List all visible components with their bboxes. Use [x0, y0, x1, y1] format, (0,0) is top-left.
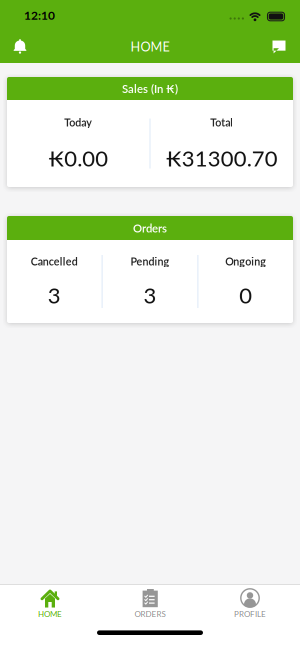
staticText: 12:10 — [24, 8, 55, 22]
staticText: Today — [64, 116, 92, 129]
button[interactable]: Profile — [200, 585, 300, 619]
staticText: HOME — [38, 609, 62, 619]
staticText: Cancelled — [31, 255, 78, 268]
staticText: 3 — [48, 282, 61, 308]
staticText: Sales (In ₭) — [122, 82, 178, 95]
staticText: HOME — [130, 39, 169, 54]
staticText: 0 — [239, 282, 252, 308]
staticText: Pending — [130, 255, 169, 268]
staticText: ₭31300.70 — [166, 145, 278, 171]
button[interactable]: Messages — [271, 31, 300, 62]
staticText: Orders — [133, 221, 167, 235]
button[interactable]: Home — [0, 585, 100, 619]
staticText: 3 — [143, 282, 156, 308]
button[interactable]: Orders — [100, 585, 200, 619]
staticText: Ongoing — [225, 255, 266, 268]
staticText: ₭0.00 — [48, 145, 108, 171]
staticText: ORDERS — [134, 609, 165, 619]
button[interactable]: Notifications — [0, 30, 28, 62]
staticText: PROFILE — [234, 609, 266, 619]
staticText: Total — [210, 116, 233, 129]
